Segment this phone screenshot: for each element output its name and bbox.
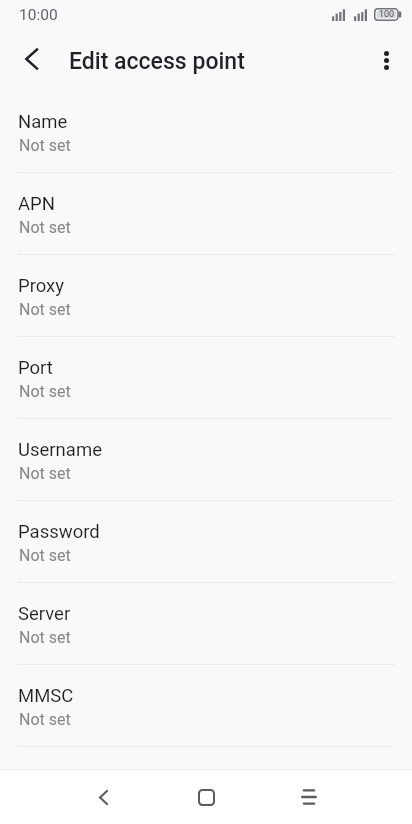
button[interactable]: Server (0, 583, 412, 665)
staticText: MMSC (18, 685, 74, 707)
staticText: APN (18, 193, 55, 215)
staticText: Not set (19, 382, 71, 401)
staticText: Not set (19, 300, 71, 319)
button[interactable]: Port (0, 337, 412, 419)
staticText: 10:00 (19, 6, 58, 24)
button[interactable]: MMSC (0, 665, 412, 747)
staticText: Not set (19, 546, 71, 565)
button[interactable]: Back (9, 37, 53, 81)
staticText: Name (18, 111, 68, 133)
staticText: Edit access point (69, 48, 245, 75)
staticText: 100 (379, 9, 395, 20)
button[interactable]: Back (77, 771, 129, 823)
staticText: Not set (19, 710, 71, 729)
button[interactable]: Username (0, 419, 412, 501)
staticText: Proxy (18, 275, 65, 297)
button[interactable]: More options (364, 38, 408, 82)
button[interactable]: Home (180, 771, 232, 823)
staticText: Not set (19, 628, 71, 647)
button[interactable]: APN (0, 173, 412, 255)
staticText: Not set (19, 218, 71, 237)
staticText: Username (18, 439, 102, 461)
button[interactable]: Password (0, 501, 412, 583)
staticText: Not set (19, 136, 71, 155)
button[interactable]: Proxy (0, 255, 412, 337)
button[interactable]: Name (0, 91, 412, 173)
button[interactable]: Recent apps (283, 771, 335, 823)
staticText: Password (18, 521, 100, 543)
staticText: Server (18, 603, 71, 625)
staticText: Port (18, 357, 53, 379)
staticText: Not set (19, 464, 71, 483)
